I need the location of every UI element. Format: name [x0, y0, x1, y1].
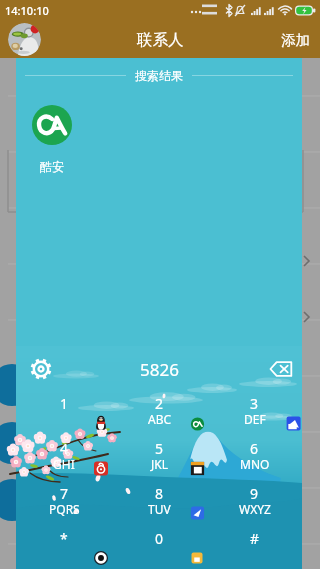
button[interactable]: Backspace [269, 357, 293, 381]
staticText: 4 [60, 439, 69, 458]
staticText: 1 [60, 394, 69, 413]
button[interactable]: 2 [112, 393, 207, 438]
button[interactable]: Settings [29, 357, 53, 381]
staticText: MNO [240, 456, 270, 472]
staticText: 3 [250, 394, 259, 413]
staticText: 14:10:10 [5, 3, 49, 18]
button[interactable]: Profile [8, 23, 41, 56]
staticText: 9 [250, 484, 259, 503]
staticText: 0 [155, 529, 164, 548]
staticText: 5 [155, 439, 164, 458]
staticText: DEF [244, 411, 266, 427]
staticText: 5826 [140, 358, 179, 381]
button[interactable]: # [207, 528, 302, 569]
button[interactable]: 3 [207, 393, 302, 438]
staticText: 8 [155, 484, 164, 503]
button[interactable]: 5 [112, 438, 207, 483]
staticText: 联系人 [137, 30, 184, 50]
staticText: TUV [148, 501, 171, 517]
button[interactable]: 4 [16, 438, 112, 483]
staticText: WXYZ [239, 501, 271, 517]
button[interactable]: 1 [16, 393, 112, 438]
staticText: 酷安 [40, 159, 64, 174]
staticText: 搜索结果 [135, 68, 183, 83]
button[interactable]: 8 [112, 483, 207, 528]
staticText: * [60, 529, 68, 548]
staticText: GHI [53, 456, 75, 472]
staticText: 7 [60, 484, 69, 503]
button[interactable]: * [16, 528, 112, 569]
staticText: JKL [151, 456, 168, 472]
staticText: ABC [148, 411, 172, 427]
button[interactable]: 添加 [267, 24, 320, 56]
button[interactable]: 0 [112, 528, 207, 569]
button[interactable]: 酷安 [24, 105, 80, 174]
button[interactable]: 7 [16, 483, 112, 528]
staticText: PQRS [49, 501, 80, 517]
staticText: 添加 [281, 31, 310, 49]
staticText: 6 [250, 439, 259, 458]
staticText: 2 [155, 394, 164, 413]
staticText: # [250, 529, 260, 548]
button[interactable]: 9 [207, 483, 302, 528]
button[interactable]: 6 [207, 438, 302, 483]
